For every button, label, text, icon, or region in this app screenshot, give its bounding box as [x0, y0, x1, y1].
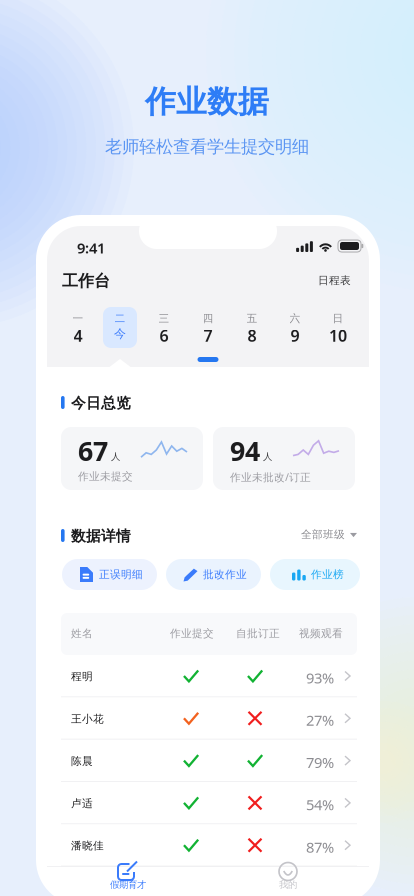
- button[interactable]: 王小花: [47, 697, 369, 740]
- staticText: 作业提交: [170, 627, 214, 640]
- button[interactable]: 潘晓佳: [47, 824, 369, 866]
- staticText: 数据详情: [71, 527, 131, 545]
- button[interactable]: 三: [142, 303, 186, 367]
- button[interactable]: 四: [186, 303, 230, 367]
- button[interactable]: 作业榜: [270, 559, 360, 590]
- staticText: 9:41: [77, 238, 105, 257]
- staticText: 93%: [306, 668, 334, 687]
- staticText: 10: [329, 325, 347, 346]
- staticText: 今: [114, 326, 126, 341]
- staticText: 四: [202, 312, 213, 325]
- staticText: 工作台: [62, 271, 110, 291]
- staticText: 54%: [306, 795, 334, 814]
- staticText: 人: [111, 451, 120, 462]
- button[interactable]: 一: [56, 303, 100, 367]
- staticText: 我的: [279, 879, 297, 890]
- staticText: 作业未批改/订正: [230, 470, 311, 484]
- staticText: 日: [332, 312, 343, 325]
- staticText: 全部班级: [301, 528, 345, 541]
- button[interactable]: 二: [98, 303, 142, 367]
- staticText: 一: [72, 312, 83, 325]
- button[interactable]: 假期育才: [93, 866, 163, 896]
- staticText: 程明: [71, 670, 93, 683]
- button[interactable]: 日: [316, 303, 360, 367]
- button[interactable]: 正误明细: [62, 559, 157, 590]
- staticText: 王小花: [71, 712, 104, 725]
- staticText: 作业未提交: [78, 470, 133, 483]
- staticText: 9: [290, 325, 299, 346]
- staticText: 27%: [306, 710, 334, 730]
- button[interactable]: 我的: [253, 866, 323, 896]
- staticText: 视频观看: [299, 627, 343, 640]
- staticText: 潘晓佳: [71, 839, 104, 852]
- button[interactable]: 批改作业: [166, 559, 261, 590]
- staticText: 六: [289, 312, 300, 325]
- button[interactable]: 卢适: [47, 782, 369, 824]
- staticText: 姓名: [71, 627, 93, 640]
- staticText: 4: [73, 325, 82, 346]
- staticText: 作业数据: [145, 83, 269, 121]
- staticText: 假期育才: [110, 879, 146, 890]
- button[interactable]: 陈晨: [47, 740, 369, 782]
- staticText: 8: [247, 325, 256, 346]
- staticText: 三: [158, 312, 169, 325]
- staticText: 老师轻松查看学生提交明细: [105, 136, 309, 157]
- staticText: 7: [203, 325, 212, 346]
- button[interactable]: 六: [273, 303, 317, 367]
- button[interactable]: 五: [230, 303, 274, 367]
- staticText: 批改作业: [203, 568, 247, 581]
- staticText: 正误明细: [99, 568, 143, 581]
- staticText: 自批订正: [236, 627, 280, 640]
- staticText: 陈晨: [71, 755, 93, 768]
- staticText: 二: [114, 312, 125, 325]
- staticText: 79%: [306, 753, 334, 772]
- staticText: 五: [246, 312, 257, 325]
- staticText: 作业榜: [311, 568, 344, 581]
- staticText: 日程表: [318, 274, 351, 287]
- button[interactable]: 程明: [47, 655, 369, 697]
- staticText: 6: [159, 325, 168, 346]
- staticText: 87%: [306, 837, 334, 857]
- staticText: 67: [78, 433, 108, 468]
- staticText: 94: [230, 433, 260, 468]
- button[interactable]: 全部班级: [295, 521, 363, 548]
- button[interactable]: 日程表: [311, 266, 358, 295]
- staticText: 人: [263, 451, 272, 462]
- staticText: 今日总览: [71, 394, 131, 412]
- staticText: 卢适: [71, 797, 93, 810]
